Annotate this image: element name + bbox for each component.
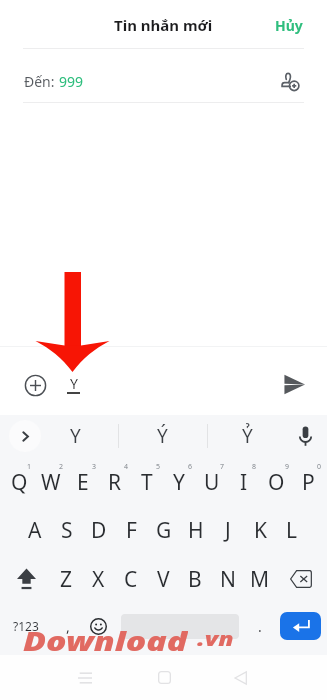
button[interactable]: G: [148, 514, 180, 546]
button[interactable]: M: [244, 563, 276, 595]
staticText: T: [141, 468, 153, 497]
staticText: 8: [252, 462, 257, 472]
staticText: Tin nhắn mới: [114, 15, 213, 35]
staticText: 3: [92, 462, 97, 472]
staticText: 999: [59, 72, 84, 91]
button[interactable]: Space: [121, 614, 239, 639]
button[interactable]: Recents: [68, 661, 102, 695]
staticText: A: [28, 516, 42, 545]
button[interactable]: Home: [147, 660, 181, 694]
staticText: S: [61, 516, 73, 545]
button[interactable]: F: [115, 514, 147, 546]
staticText: N: [220, 565, 236, 594]
button[interactable]: L: [276, 514, 308, 546]
staticText: ?123: [13, 618, 39, 634]
staticText: .: [258, 617, 262, 636]
button[interactable]: J: [212, 514, 244, 546]
button[interactable]: E: [67, 466, 99, 498]
staticText: Ỷ: [242, 423, 253, 449]
staticText: Y: [70, 423, 81, 449]
button[interactable]: Z: [50, 563, 82, 595]
button[interactable]: Ý: [134, 420, 190, 452]
button[interactable]: ,: [54, 610, 82, 642]
staticText: 7: [220, 462, 225, 472]
staticText: Y: [173, 468, 185, 497]
button[interactable]: Back: [224, 661, 258, 695]
staticText: U: [204, 468, 220, 497]
staticText: X: [92, 565, 105, 594]
staticText: M: [250, 565, 270, 594]
staticText: W: [41, 468, 61, 497]
button[interactable]: N: [212, 563, 244, 595]
button[interactable]: Q: [3, 466, 35, 498]
staticText: 1: [27, 462, 32, 472]
staticText: F: [126, 516, 137, 545]
button[interactable]: B: [179, 563, 211, 595]
staticText: 6: [188, 462, 193, 472]
button[interactable]: A: [19, 514, 51, 546]
staticText: Y: [70, 374, 78, 393]
button[interactable]: Y: [163, 466, 195, 498]
button[interactable]: Emoji: [84, 610, 112, 642]
button[interactable]: .: [246, 610, 274, 642]
button[interactable]: H: [180, 514, 212, 546]
staticText: H: [188, 516, 204, 545]
button[interactable]: Backspace: [283, 563, 319, 595]
button[interactable]: Add attachment: [24, 374, 47, 397]
button[interactable]: Add contact: [278, 70, 300, 92]
staticText: D: [91, 516, 107, 545]
button[interactable]: V: [147, 563, 179, 595]
button[interactable]: R: [99, 466, 131, 498]
button[interactable]: T: [131, 466, 163, 498]
staticText: 4: [124, 462, 129, 472]
button[interactable]: U: [196, 466, 228, 498]
button[interactable]: X: [82, 563, 114, 595]
staticText: 5: [156, 462, 161, 472]
staticText: ,: [66, 617, 70, 636]
button[interactable]: O: [260, 466, 292, 498]
button[interactable]: Enter: [280, 612, 321, 640]
staticText: Ý: [157, 423, 168, 449]
staticText: J: [225, 516, 231, 545]
staticText: B: [188, 565, 202, 594]
staticText: C: [124, 565, 138, 594]
staticText: Đến:: [24, 72, 59, 91]
button[interactable]: P: [292, 466, 324, 498]
staticText: L: [286, 516, 298, 545]
button[interactable]: More suggestions: [9, 420, 41, 452]
button[interactable]: Shift: [8, 563, 44, 595]
button[interactable]: W: [35, 466, 67, 498]
staticText: Hủy: [275, 16, 303, 35]
staticText: R: [108, 468, 122, 497]
button[interactable]: Send: [284, 374, 305, 395]
staticText: G: [156, 516, 172, 545]
staticText: 2: [59, 462, 64, 472]
button[interactable]: D: [83, 514, 115, 546]
button[interactable]: Y: [50, 420, 100, 452]
staticText: O: [268, 468, 285, 497]
staticText: Download: [23, 623, 188, 651]
button[interactable]: K: [244, 514, 276, 546]
button[interactable]: Ỷ: [219, 420, 275, 452]
button[interactable]: S: [51, 514, 83, 546]
button[interactable]: I: [228, 466, 260, 498]
button[interactable]: C: [115, 563, 147, 595]
staticText: 9: [285, 462, 290, 472]
staticText: K: [254, 516, 267, 545]
staticText: Z: [60, 565, 73, 594]
staticText: 0: [317, 462, 322, 472]
button[interactable]: Hủy: [266, 5, 312, 45]
staticText: P: [302, 468, 315, 497]
button[interactable]: ?123: [2, 610, 50, 642]
staticText: V: [157, 565, 170, 594]
staticText: .vn: [197, 626, 234, 652]
staticText: Q: [11, 468, 28, 497]
staticText: I: [240, 468, 248, 497]
button[interactable]: Voice input: [291, 421, 320, 450]
staticText: E: [77, 468, 89, 497]
